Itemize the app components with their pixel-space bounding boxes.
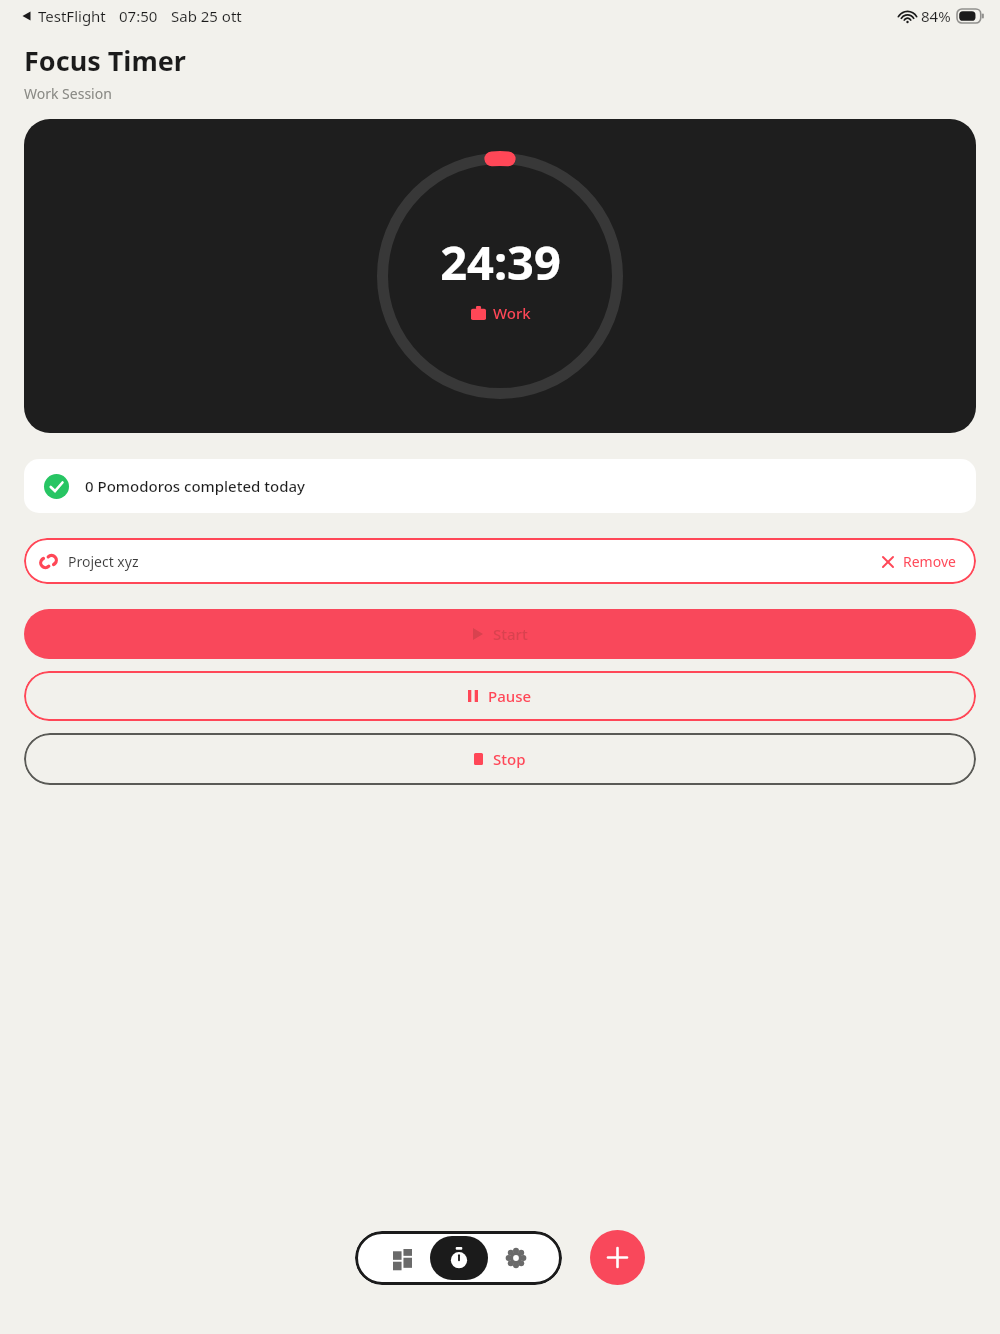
button[interactable]: Pause: [24, 671, 976, 721]
staticText: 84%: [921, 6, 951, 26]
button[interactable]: Dashboard: [380, 1236, 424, 1280]
button[interactable]: Stop: [24, 733, 976, 785]
staticText: 07:50: [119, 6, 158, 26]
button[interactable]: Settings: [494, 1236, 538, 1280]
staticText: Focus Timer: [24, 42, 186, 79]
button[interactable]: Add: [590, 1230, 645, 1285]
staticText: Sab 25 ott: [171, 6, 242, 26]
staticText: Project xyz: [68, 552, 139, 571]
button[interactable]: Timer: [430, 1236, 488, 1280]
staticText: Work Session: [24, 84, 112, 103]
button[interactable]: Remove: [877, 548, 960, 575]
button[interactable]: Start: [24, 609, 976, 659]
staticText: 24:39: [440, 230, 561, 294]
staticText: Remove: [903, 552, 956, 571]
staticText: Work: [493, 303, 531, 323]
button[interactable]: 24:39: [24, 119, 976, 433]
staticText: 0 Pomodoros completed today: [85, 476, 305, 496]
staticText: Pause: [488, 686, 532, 706]
staticText: Start: [493, 624, 528, 644]
button[interactable]: 0 Pomodoros completed today: [24, 459, 976, 513]
staticText: TestFlight: [38, 6, 106, 26]
staticText: Stop: [493, 749, 526, 769]
button[interactable]: Project xyz: [24, 538, 976, 584]
